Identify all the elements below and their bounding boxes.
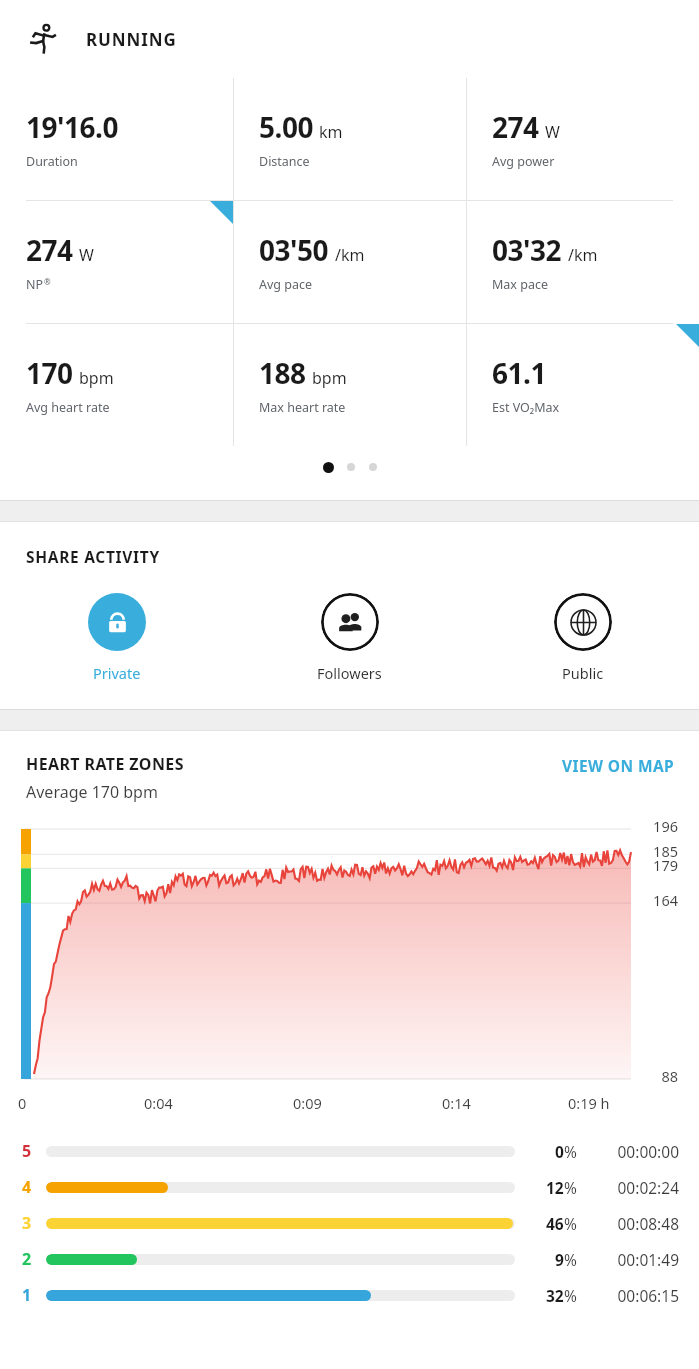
staticText: /km — [568, 244, 598, 266]
staticText: Avg power — [492, 153, 555, 170]
staticText: /km — [335, 244, 365, 266]
staticText: 0:14 — [442, 1093, 471, 1113]
staticText: Public — [562, 663, 604, 683]
button[interactable]: 61.1 — [466, 324, 699, 446]
staticText: 00:08:48 — [587, 1213, 679, 1234]
staticText: W — [79, 244, 94, 266]
staticText: 5.00 — [259, 108, 313, 146]
staticText: 00:06:15 — [587, 1285, 679, 1306]
staticText: Average 170 bpm — [26, 781, 158, 803]
button[interactable]: VIEW ON MAP — [560, 753, 677, 778]
staticText: 88 — [637, 1066, 678, 1086]
button[interactable]: 4 — [0, 1169, 699, 1205]
staticText: % — [564, 1141, 577, 1162]
button[interactable]: Public — [466, 593, 699, 683]
staticText: 03'50 — [259, 231, 329, 269]
button[interactable]: 188 — [233, 324, 466, 446]
staticText: HEART RATE ZONES — [26, 753, 184, 775]
staticText: SHARE ACTIVITY — [26, 546, 160, 567]
staticText: Avg pace — [259, 276, 313, 293]
button[interactable]: RUNNING — [0, 0, 699, 78]
staticText: 1 — [22, 1284, 32, 1306]
staticText: Followers — [317, 663, 382, 683]
staticText: 274 — [26, 231, 73, 269]
staticText: 0 — [18, 1093, 27, 1113]
staticText: 00:00:00 — [587, 1141, 679, 1162]
staticText: 196 — [637, 816, 678, 836]
staticText: ® — [44, 276, 51, 287]
button[interactable]: 274 — [466, 78, 699, 200]
staticText: Est VO₂Max — [492, 399, 560, 416]
button[interactable]: Private — [0, 593, 233, 683]
staticText: W — [545, 121, 560, 143]
staticText: 03'32 — [492, 231, 562, 269]
button[interactable]: 274 — [0, 201, 233, 323]
staticText: NP — [26, 276, 44, 293]
staticText: 185 — [637, 841, 678, 861]
staticText: 9 — [555, 1249, 564, 1270]
staticText: Max pace — [492, 276, 548, 293]
staticText: 0:04 — [144, 1093, 173, 1113]
button[interactable]: 19'16.0 — [0, 78, 233, 200]
staticText: 00:01:49 — [587, 1249, 679, 1270]
staticText: Max heart rate — [259, 399, 346, 416]
staticText: Avg heart rate — [26, 399, 110, 416]
staticText: Duration — [26, 153, 78, 170]
staticText: RUNNING — [86, 28, 177, 51]
staticText: Private — [93, 663, 141, 683]
staticText: km — [319, 121, 343, 143]
button[interactable]: 5.00 — [233, 78, 466, 200]
staticText: 46 — [546, 1213, 564, 1234]
staticText: 61.1 — [492, 354, 546, 392]
staticText: 170 — [26, 354, 73, 392]
button[interactable]: 03'50 — [233, 201, 466, 323]
button[interactable]: 03'32 — [466, 201, 699, 323]
staticText: % — [564, 1177, 577, 1198]
staticText: bpm — [79, 367, 114, 389]
staticText: 164 — [637, 890, 678, 910]
staticText: 188 — [259, 354, 306, 392]
button[interactable]: 170 — [0, 324, 233, 446]
staticText: % — [564, 1249, 577, 1270]
staticText: 00:02:24 — [587, 1177, 679, 1198]
staticText: bpm — [312, 367, 347, 389]
button[interactable]: 1 — [0, 1277, 699, 1313]
staticText: 274 — [492, 108, 539, 146]
staticText: 0 — [555, 1141, 564, 1162]
button[interactable]: Followers — [233, 593, 466, 683]
staticText: Distance — [259, 153, 310, 170]
staticText: % — [564, 1213, 577, 1234]
staticText: 3 — [22, 1212, 32, 1234]
button[interactable]: 3 — [0, 1205, 699, 1241]
staticText: 5 — [22, 1140, 32, 1162]
staticText: 32 — [546, 1285, 564, 1306]
staticText: 0:09 — [293, 1093, 322, 1113]
button[interactable]: 2 — [0, 1241, 699, 1277]
button[interactable]: 5 — [0, 1133, 699, 1169]
staticText: 2 — [22, 1248, 32, 1270]
staticText: 179 — [637, 855, 678, 875]
staticText: 4 — [22, 1176, 32, 1198]
staticText: % — [564, 1285, 577, 1306]
staticText: VIEW ON MAP — [562, 755, 675, 776]
staticText: 0:19 h — [568, 1093, 610, 1113]
staticText: 12 — [546, 1177, 564, 1198]
staticText: 19'16.0 — [26, 108, 118, 146]
